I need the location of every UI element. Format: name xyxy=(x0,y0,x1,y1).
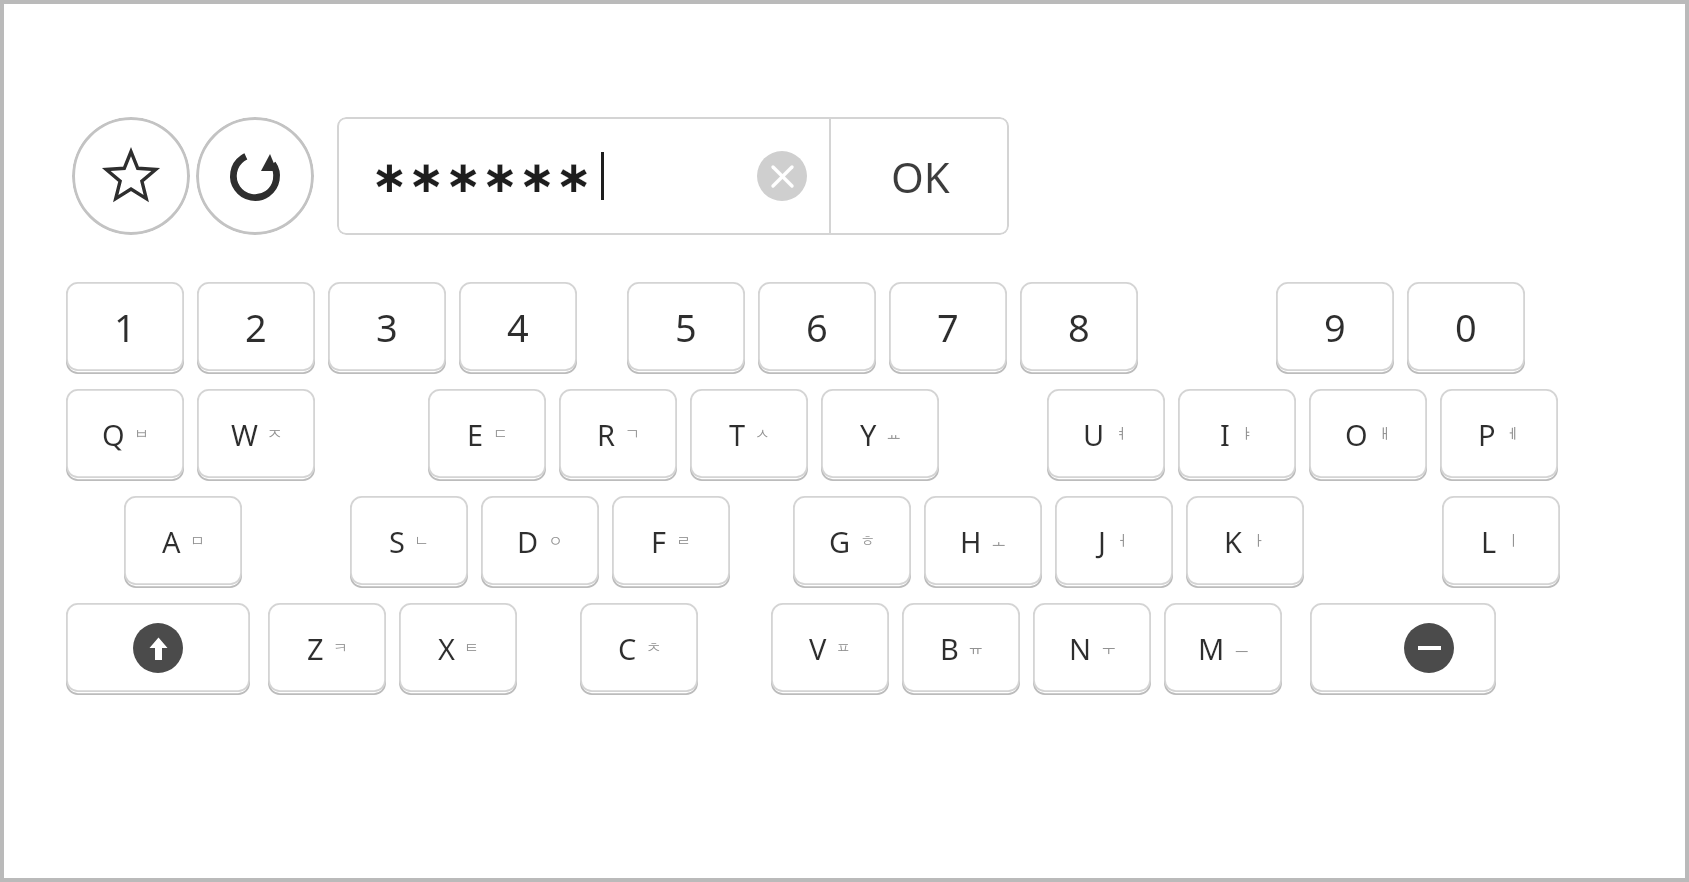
button[interactable]: 6 xyxy=(758,282,876,372)
staticText: ㅁ xyxy=(190,532,205,551)
staticText: ㅓ xyxy=(1115,532,1130,551)
button[interactable]: Favorite xyxy=(72,117,190,235)
staticText: ㄴ xyxy=(414,532,429,551)
staticText: P xyxy=(1478,415,1496,454)
staticText: ㅇ xyxy=(548,532,563,551)
staticText: R xyxy=(597,415,616,454)
staticText: S xyxy=(389,522,405,561)
button[interactable]: Q xyxy=(66,389,184,479)
button[interactable]: 0 xyxy=(1407,282,1525,372)
button[interactable]: Backspace xyxy=(1310,603,1496,693)
staticText: ㄷ xyxy=(493,425,508,444)
staticText: K xyxy=(1224,522,1242,561)
button[interactable]: D xyxy=(481,496,599,586)
staticText: ㅔ xyxy=(1505,425,1520,444)
staticText: ㅅ xyxy=(755,425,770,444)
staticText: I xyxy=(1220,415,1230,454)
button[interactable]: ∗∗∗∗∗∗ xyxy=(337,117,829,235)
staticText: 8 xyxy=(1068,301,1090,353)
staticText: ㅂ xyxy=(134,425,149,444)
button[interactable]: OK xyxy=(831,117,1009,235)
button[interactable]: W xyxy=(197,389,315,479)
button[interactable]: E xyxy=(428,389,546,479)
button[interactable]: 9 xyxy=(1276,282,1394,372)
staticText: 9 xyxy=(1324,301,1346,353)
staticText: E xyxy=(467,415,484,454)
button[interactable]: T xyxy=(690,389,808,479)
button[interactable]: Refresh xyxy=(196,117,314,235)
staticText: A xyxy=(162,522,181,561)
button[interactable]: J xyxy=(1055,496,1173,586)
staticText: ㅜ xyxy=(1101,639,1116,658)
staticText: Z xyxy=(307,629,324,668)
staticText: ㅋ xyxy=(333,639,348,658)
button[interactable]: H xyxy=(924,496,1042,586)
button[interactable]: M xyxy=(1164,603,1282,693)
button[interactable]: O xyxy=(1309,389,1427,479)
button[interactable]: U xyxy=(1047,389,1165,479)
staticText: ㅏ xyxy=(1251,532,1266,551)
staticText: OK xyxy=(891,148,950,205)
staticText: Y xyxy=(860,415,877,454)
staticText: 2 xyxy=(245,301,267,353)
staticText: J xyxy=(1098,522,1106,561)
button[interactable]: K xyxy=(1186,496,1304,586)
button[interactable]: Y xyxy=(821,389,939,479)
button[interactable]: X xyxy=(399,603,517,693)
staticText: ㅠ xyxy=(968,639,983,658)
button[interactable]: N xyxy=(1033,603,1151,693)
button[interactable]: 2 xyxy=(197,282,315,372)
staticText: D xyxy=(517,522,539,561)
staticText: 5 xyxy=(675,301,697,353)
staticText: ㅎ xyxy=(860,532,875,551)
staticText: ∗∗∗∗∗∗ xyxy=(371,151,593,202)
button[interactable]: Clear text xyxy=(757,151,807,201)
button[interactable]: G xyxy=(793,496,911,586)
staticText: ㅍ xyxy=(836,639,851,658)
button[interactable]: 3 xyxy=(328,282,446,372)
button[interactable]: S xyxy=(350,496,468,586)
button[interactable]: 5 xyxy=(627,282,745,372)
staticText: 4 xyxy=(507,301,529,353)
staticText: N xyxy=(1069,629,1092,668)
staticText: H xyxy=(960,522,982,561)
button[interactable]: I xyxy=(1178,389,1296,479)
staticText: F xyxy=(651,522,667,561)
staticText: W xyxy=(231,415,258,454)
staticText: T xyxy=(729,415,746,454)
staticText: X xyxy=(438,629,455,668)
staticText: B xyxy=(940,629,959,668)
staticText: G xyxy=(829,522,851,561)
button[interactable]: Z xyxy=(268,603,386,693)
staticText: ㄹ xyxy=(676,532,691,551)
button[interactable]: P xyxy=(1440,389,1558,479)
staticText: 1 xyxy=(114,301,136,353)
button[interactable]: C xyxy=(580,603,698,693)
staticText: ㅊ xyxy=(646,639,661,658)
staticText: C xyxy=(618,629,637,668)
staticText: ㅕ xyxy=(1114,425,1129,444)
button[interactable]: 1 xyxy=(66,282,184,372)
button[interactable]: V xyxy=(771,603,889,693)
staticText: U xyxy=(1083,415,1105,454)
button[interactable]: L xyxy=(1442,496,1560,586)
staticText: 0 xyxy=(1455,301,1477,353)
staticText: ㅑ xyxy=(1239,425,1254,444)
button[interactable]: F xyxy=(612,496,730,586)
button[interactable]: B xyxy=(902,603,1020,693)
button[interactable]: Shift xyxy=(66,603,250,693)
button[interactable]: 8 xyxy=(1020,282,1138,372)
staticText: M xyxy=(1198,629,1225,668)
staticText: ㅛ xyxy=(886,425,901,444)
staticText: Q xyxy=(102,415,125,454)
staticText: L xyxy=(1481,522,1497,561)
staticText: ㅗ xyxy=(991,532,1006,551)
button[interactable]: 7 xyxy=(889,282,1007,372)
button[interactable]: 4 xyxy=(459,282,577,372)
button[interactable]: R xyxy=(559,389,677,479)
staticText: ㅣ xyxy=(1506,532,1521,551)
staticText: ㅡ xyxy=(1234,639,1249,658)
button[interactable]: A xyxy=(124,496,242,586)
staticText: 6 xyxy=(806,301,828,353)
staticText: O xyxy=(1345,415,1368,454)
